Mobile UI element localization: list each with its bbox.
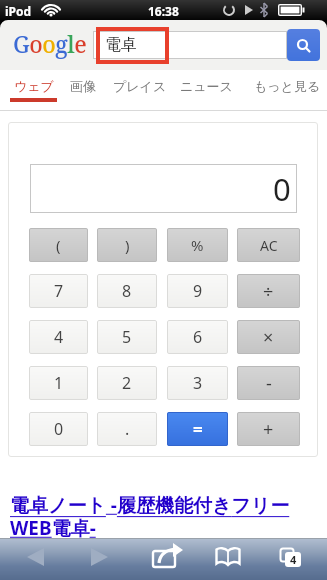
button[interactable] [287,29,320,61]
button[interactable]: - [237,366,300,400]
button[interactable] [86,545,112,569]
button[interactable] [215,547,241,567]
staticText: ÷ [263,279,274,304]
button[interactable]: 電卓 [93,31,287,59]
staticText: 8 [122,280,132,302]
staticText: 3 [193,372,203,394]
button[interactable]: ウェブ [14,78,54,94]
button[interactable] [150,543,186,573]
button[interactable]: 画像 [70,78,96,94]
button[interactable]: 0 [29,412,88,446]
button[interactable] [23,545,49,569]
button[interactable]: もっと見る [254,78,321,94]
button[interactable]: + [237,412,300,446]
button[interactable]: ) [97,228,157,262]
button[interactable]: 2 [97,366,157,400]
button[interactable]: 7 [29,274,88,308]
button[interactable]: 3 [167,366,228,400]
button[interactable]: AC [237,228,300,262]
staticText: 7 [54,280,64,302]
button[interactable]: 6 [167,320,228,354]
button[interactable]: ニュース [180,78,233,94]
staticText: 1 [54,372,64,394]
staticText: ) [125,235,130,255]
button[interactable]: × [237,320,300,354]
staticText: % [191,235,204,255]
staticText: 4 [290,552,297,567]
button[interactable]: 5 [97,320,157,354]
button[interactable]: 1 [29,366,88,400]
staticText: ( [56,235,61,255]
staticText: 16:38 [148,3,179,19]
staticText: Google [13,28,87,59]
button[interactable]: WEB電卓- [10,515,96,541]
staticText: + [263,417,274,442]
button[interactable]: ÷ [237,274,300,308]
staticText: 4 [54,326,64,348]
button[interactable]: % [167,228,228,262]
staticText: = [193,418,203,441]
staticText: 5 [122,326,132,348]
button[interactable]: 電卓ノート -履歴機能付きフリー [10,492,290,518]
staticText: 電卓 [105,35,137,55]
staticText: 6 [193,326,203,348]
staticText: AC [260,236,278,255]
button[interactable]: = [167,412,228,446]
button[interactable]: 9 [167,274,228,308]
staticText: 9 [193,280,203,302]
staticText: . [125,418,130,440]
button[interactable]: 4 [279,547,303,569]
button[interactable]: ( [29,228,88,262]
staticText: - [266,371,272,396]
staticText: iPod [5,3,32,19]
button[interactable]: 4 [29,320,88,354]
button[interactable]: 8 [97,274,157,308]
staticText: 0 [54,418,64,440]
staticText: × [263,325,274,350]
button[interactable]: . [97,412,157,446]
staticText: 0 [273,168,291,210]
staticText: 2 [122,372,132,394]
button[interactable]: プレイス [113,78,167,94]
